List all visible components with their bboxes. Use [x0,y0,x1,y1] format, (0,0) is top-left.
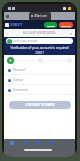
staticText: × [70,31,73,35]
button[interactable]: Browser [49,141,53,145]
button[interactable]: Close [69,31,73,35]
button[interactable]: Back [6,31,10,35]
staticText: verify your account [14,39,38,43]
staticText: CONTINUE TO VERIFY [25,103,55,107]
button[interactable]: SIGN UP [59,22,73,28]
button[interactable]: Menu [5,23,9,27]
button[interactable]: Documents [4,85,75,95]
button[interactable]: Tab 2 [12,7,15,10]
staticText: 20BET [10,22,23,28]
button[interactable]: Warning [68,7,71,10]
staticText: 20BET [4,51,75,55]
button[interactable]: Contact [4,75,75,85]
button[interactable]: LOGIN [44,22,57,28]
button[interactable]: verify your account [6,38,73,44]
button[interactable]: Step 2 [38,58,43,63]
staticText: Verification of your account is required [4,46,75,50]
staticText: Documents [13,88,29,92]
button[interactable]: Personal [4,65,75,75]
staticText: SIGN UP [61,24,71,27]
staticText: LOGIN [47,24,55,27]
staticText: 20bet.com [34,14,47,18]
button[interactable]: 20bet.com [29,12,51,20]
staticText: Contact [13,78,24,82]
staticText: ‹ [7,31,9,35]
button[interactable]: Menu [6,15,9,18]
button[interactable]: Tab 1 [8,7,11,10]
button[interactable]: Files [36,141,40,145]
staticText: ACCOUNT VERIFICATION [23,31,56,35]
button[interactable]: Extension [63,7,66,10]
button[interactable]: Back [10,141,14,145]
staticText: Personal [13,68,25,72]
button[interactable]: Step 3 [67,58,72,63]
button[interactable]: Apps [23,141,27,145]
button[interactable]: Step 1 complete [7,57,14,64]
button[interactable]: CONTINUE TO VERIFY [9,101,71,109]
